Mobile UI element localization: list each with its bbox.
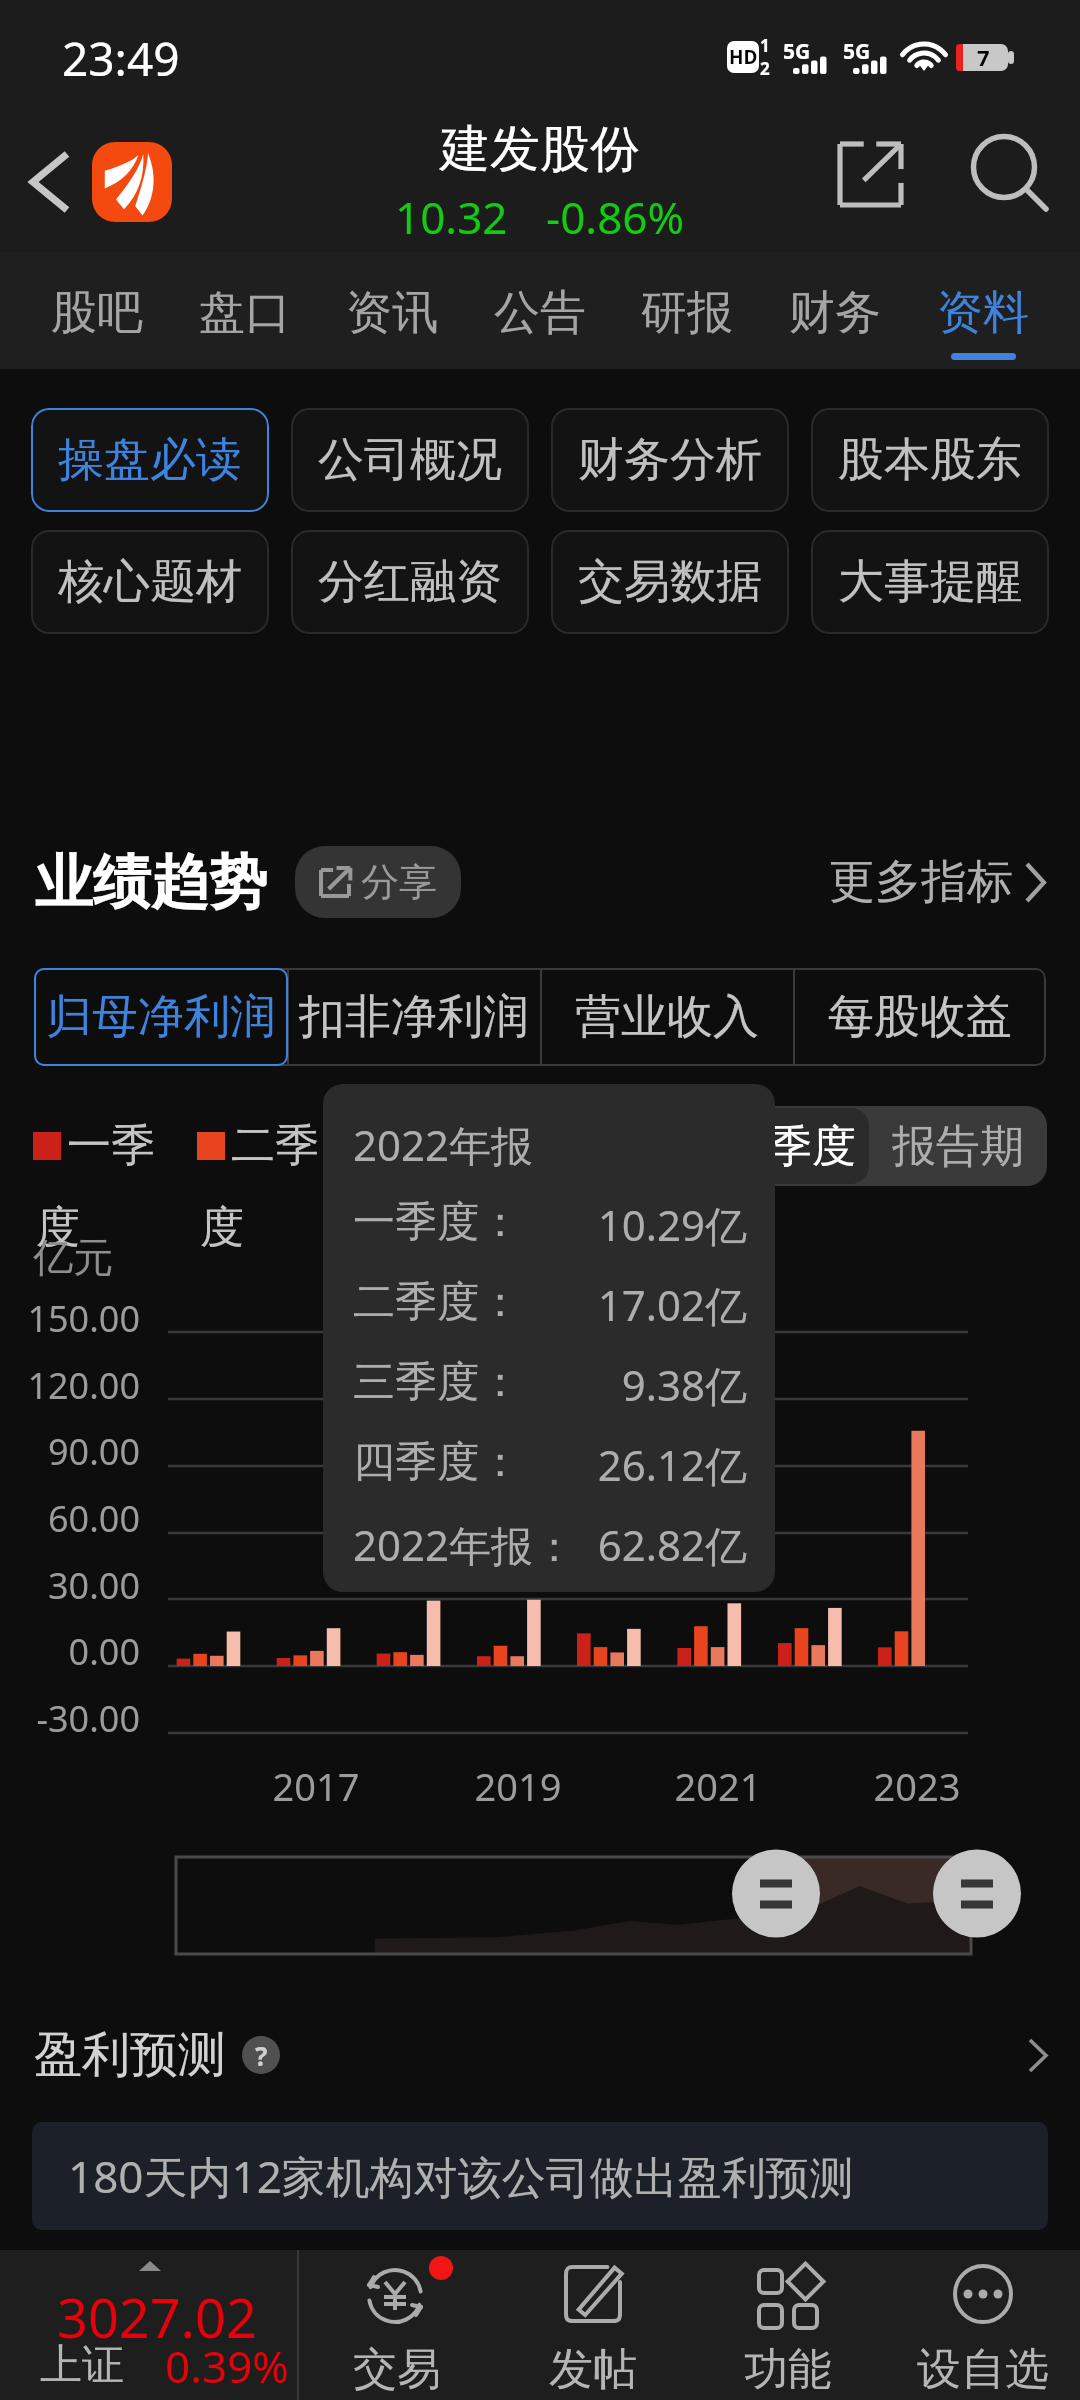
button[interactable]: 公告 [467,252,613,369]
staticText: 报告期 [892,1119,1024,1174]
staticText: 资讯 [346,284,438,342]
staticText: 62.82亿 [323,1516,747,1573]
button[interactable]: Back [12,144,88,220]
button[interactable]: 交易数据 [551,530,789,634]
staticText: 更多指标 [829,853,1013,911]
button[interactable]: 股吧 [24,252,170,369]
staticText: 1 [760,34,770,57]
staticText: 功能 [744,2342,832,2397]
staticText: 2022年报： [353,1516,576,1573]
button[interactable]: 交易 [299,2250,495,2400]
button[interactable]: 资讯 [319,252,465,369]
staticText: 股本股东 [838,431,1022,489]
button[interactable]: Range handle [716,1845,836,1942]
staticText: 财务 [789,284,881,342]
staticText: 三季 [395,1118,483,1173]
staticText: 二季 [231,1118,319,1173]
staticText: 2 [760,57,770,80]
button[interactable]: 财务分析 [551,408,789,512]
staticText: 股吧 [51,284,143,342]
staticText: 度 [200,1200,244,1255]
staticText: 二季度： [353,1276,521,1329]
button[interactable]: 180天内12家机构对该公司做出盈利预测 [32,2122,1048,2230]
staticText: 操盘必读 [58,431,242,489]
staticText: 发帖 [549,2342,637,2397]
staticText: 3027.02 [57,2280,257,2354]
staticText: 9.38亿 [323,1356,747,1413]
staticText: 大事提醒 [838,553,1022,611]
staticText: 0.00 [0,1627,140,1676]
staticText: 季度 [768,1119,856,1174]
staticText: 盈利预测 [34,2025,226,2085]
button[interactable]: 公司概况 [291,408,529,512]
staticText: 60.00 [0,1494,140,1543]
staticText: 分红融资 [318,553,502,611]
staticText: 150.00 [0,1294,140,1343]
staticText: 设自选 [917,2342,1049,2397]
button[interactable]: 盘口 [172,252,318,369]
staticText: 2022年报 [353,1116,534,1173]
staticText: 每股收益 [828,988,1012,1046]
button[interactable]: 操盘必读 [31,408,269,512]
staticText: 建发股份 [440,118,640,181]
button[interactable]: 分红融资 [291,530,529,634]
staticText: 90.00 [0,1427,140,1476]
staticText: 10.32 [395,187,508,247]
button[interactable]: 分享 [295,846,461,918]
staticText: 度 [364,1200,408,1255]
button[interactable]: 功能 [690,2250,885,2400]
button[interactable]: 季度 [754,1108,869,1184]
button[interactable]: 研报 [614,252,760,369]
staticText: 盘口 [199,284,291,342]
button[interactable]: 设自选 [885,2250,1080,2400]
button[interactable]: 发帖 [495,2250,690,2400]
button[interactable]: 资料 [910,252,1056,369]
staticText: 一季度： [353,1196,521,1249]
button[interactable]: 大事提醒 [811,530,1049,634]
button[interactable]: More [1010,2027,1066,2083]
staticText: 核心题材 [58,553,242,611]
button[interactable]: 核心题材 [31,530,269,634]
staticText: 一季 [67,1118,155,1173]
button[interactable]: 股本股东 [811,408,1049,512]
staticText: -30.00 [0,1694,140,1743]
staticText: 180天内12家机构对该公司做出盈利预测 [68,2146,854,2206]
button[interactable]: 财务 [762,252,908,369]
button[interactable]: 更多指标 [829,853,1046,911]
staticText: 7 [977,42,990,72]
staticText: -0.86% [546,187,685,247]
staticText: 财务分析 [578,431,762,489]
button[interactable]: App icon [92,142,172,222]
button[interactable]: 扣非净利润 [287,968,540,1066]
staticText: 30.00 [0,1561,140,1610]
staticText: 亿元 [33,1232,113,1282]
button[interactable]: 归母净利润 [34,968,287,1066]
staticText: 5G [843,37,871,66]
staticText: 0.39% [165,2336,289,2396]
staticText: 17.02亿 [323,1276,747,1333]
staticText: 三季度： [353,1356,521,1409]
staticText: 研报 [641,284,733,342]
staticText: 扣非净利润 [299,988,529,1046]
button[interactable]: 营业收入 [540,968,793,1066]
staticText: 分享 [361,858,437,906]
button[interactable]: 3027.02 [0,2250,297,2400]
staticText: 26.12亿 [323,1436,747,1493]
staticText: 归母净利润 [46,988,276,1046]
button[interactable]: 报告期 [869,1106,1047,1186]
button[interactable]: 每股收益 [793,968,1046,1066]
button[interactable]: Search [956,121,1064,229]
staticText: 四季度： [353,1436,521,1489]
staticText: 公告 [494,284,586,342]
staticText: 交易数据 [578,553,762,611]
staticText: 5G [783,37,811,66]
button[interactable]: Range handle [917,1845,1037,1942]
staticText: HD [729,44,758,70]
button[interactable]: Help [242,2036,280,2074]
staticText: 120.00 [0,1361,140,1410]
button[interactable]: Share [816,120,926,230]
staticText: 公司概况 [318,431,502,489]
staticText: 23:49 [62,27,180,90]
